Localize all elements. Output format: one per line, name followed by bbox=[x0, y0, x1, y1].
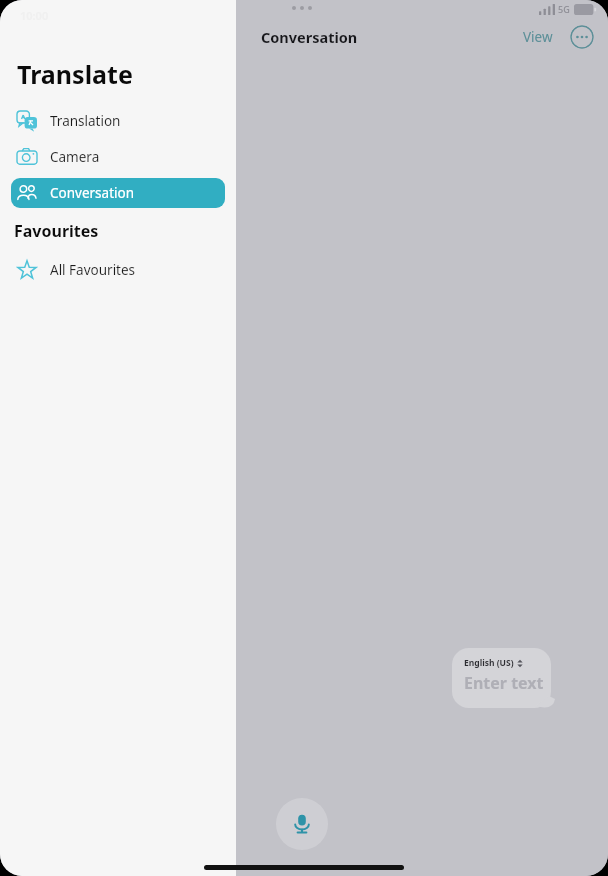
button[interactable]: Conversation bbox=[11, 178, 225, 208]
button[interactable]: All Favourites bbox=[11, 255, 225, 285]
button[interactable]: More options bbox=[570, 25, 594, 49]
staticText: Translation bbox=[50, 112, 121, 130]
staticText: Camera bbox=[50, 148, 100, 166]
staticText: Conversation bbox=[50, 184, 134, 202]
staticText: All Favourites bbox=[50, 261, 136, 279]
button[interactable]: Translation bbox=[11, 106, 225, 136]
staticText: View bbox=[523, 28, 553, 46]
staticText: Conversation bbox=[261, 27, 358, 47]
button[interactable]: View bbox=[519, 25, 557, 49]
button[interactable]: Camera bbox=[11, 142, 225, 172]
staticText: Translate bbox=[17, 57, 133, 91]
staticText: 5G bbox=[558, 3, 570, 15]
staticText: English (US) bbox=[464, 657, 514, 669]
staticText: Favourites bbox=[14, 220, 99, 242]
button[interactable]: Record speech bbox=[276, 798, 328, 850]
button[interactable]: English (US) bbox=[452, 648, 551, 708]
staticText: Enter text bbox=[464, 672, 544, 694]
